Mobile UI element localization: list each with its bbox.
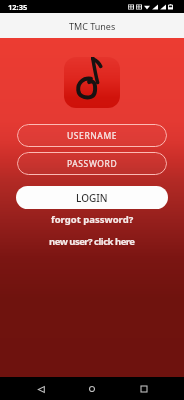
staticText: new user? click here [49,235,135,248]
button[interactable]: PASSWORD [17,152,167,175]
button[interactable]: Home [81,378,103,400]
button[interactable]: USERNAME [17,124,167,147]
button[interactable]: Recents [133,378,155,400]
staticText: 12:35 [8,2,28,12]
button[interactable]: forgot password? [0,213,184,226]
staticText: LOGIN [76,191,108,205]
button[interactable]: Back [30,378,52,400]
button[interactable]: LOGIN [16,186,168,209]
staticText: TMC Tunes [69,20,116,32]
button[interactable]: new user? click here [0,235,184,248]
staticText: forgot password? [51,213,134,226]
staticText: USERNAME [67,130,118,142]
button[interactable]: TMC Tunes logo [64,57,120,108]
staticText: PASSWORD [67,158,118,170]
